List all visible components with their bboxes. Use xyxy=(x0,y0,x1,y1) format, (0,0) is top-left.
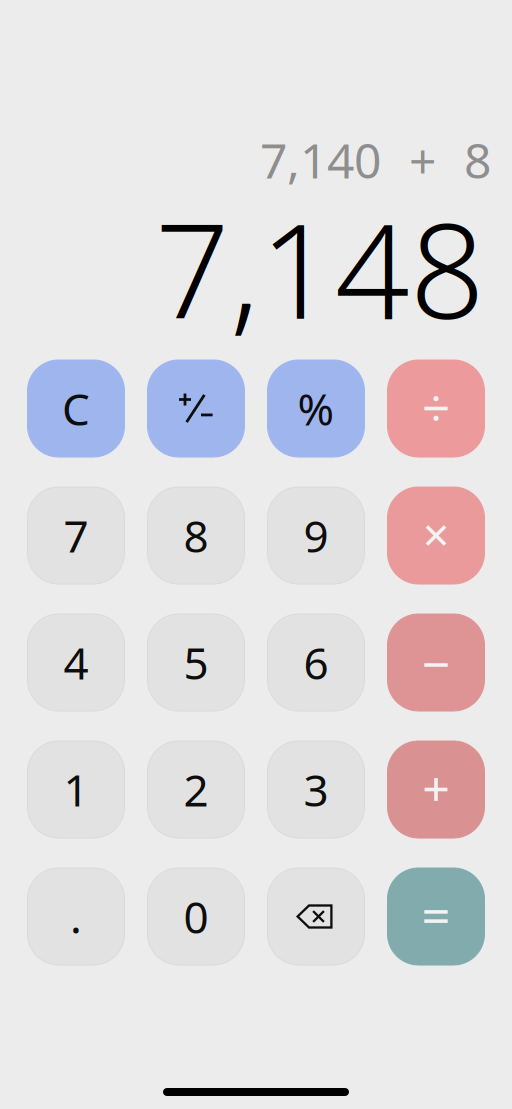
staticText: 3 xyxy=(303,760,328,819)
staticText: 7,140 + 8 xyxy=(260,128,491,192)
button[interactable]: . xyxy=(27,868,124,965)
button[interactable]: 9 xyxy=(267,487,364,584)
staticText: % xyxy=(297,379,334,438)
button[interactable]: 8 xyxy=(147,487,244,584)
button[interactable]: 0 xyxy=(147,868,244,965)
staticText: 0 xyxy=(183,887,208,946)
staticText: 7 xyxy=(63,506,88,565)
button[interactable]: Multiply xyxy=(387,487,484,584)
button[interactable]: 2 xyxy=(147,741,244,838)
staticText: . xyxy=(70,887,82,946)
staticText: 7,148 xyxy=(155,181,485,355)
staticText: 6 xyxy=(303,633,328,692)
button[interactable]: Toggle sign xyxy=(147,360,244,457)
button[interactable]: 3 xyxy=(267,741,364,838)
button[interactable]: Add xyxy=(387,741,484,838)
button[interactable]: Backspace xyxy=(267,868,364,965)
staticText: 9 xyxy=(303,506,328,565)
button[interactable]: C xyxy=(27,360,124,457)
button[interactable]: 6 xyxy=(267,614,364,711)
button[interactable]: 5 xyxy=(147,614,244,711)
staticText: 4 xyxy=(63,633,88,692)
button[interactable]: Equals xyxy=(387,868,484,965)
button[interactable]: 4 xyxy=(27,614,124,711)
staticText: 8 xyxy=(183,506,208,565)
button[interactable]: % xyxy=(267,360,364,457)
button[interactable]: Divide xyxy=(387,360,484,457)
staticText: 2 xyxy=(183,760,208,819)
button[interactable]: 1 xyxy=(27,741,124,838)
staticText: 1 xyxy=(63,760,88,819)
staticText: C xyxy=(62,379,90,438)
button[interactable]: Subtract xyxy=(387,614,484,711)
staticText: 5 xyxy=(183,633,208,692)
button[interactable]: 7 xyxy=(27,487,124,584)
